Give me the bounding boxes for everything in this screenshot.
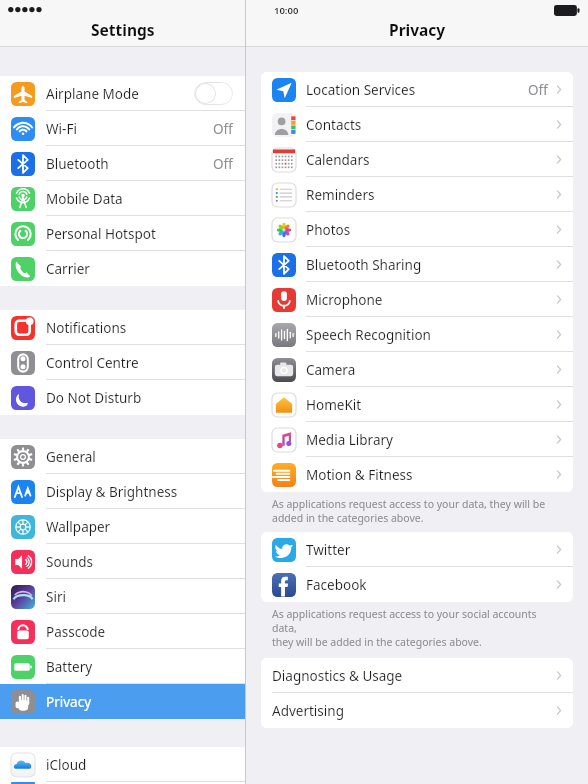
- staticText: Reminders: [306, 186, 375, 204]
- staticText: Off: [213, 155, 233, 173]
- staticText: As applications request access to your s…: [272, 607, 557, 649]
- staticText: Privacy: [389, 19, 446, 40]
- staticText: Twitter: [306, 541, 351, 559]
- staticText: Facebook: [306, 576, 367, 594]
- button[interactable]: Bluetooth Sharing: [261, 247, 573, 282]
- staticText: Bluetooth Sharing: [306, 256, 422, 274]
- button[interactable]: [0, 782, 245, 784]
- button[interactable]: Diagnostics & Usage: [261, 658, 573, 693]
- button[interactable]: Speech Recognition: [261, 317, 573, 352]
- button[interactable]: Display & Brightness: [0, 474, 245, 509]
- button[interactable]: Airplane Mode: [0, 76, 245, 111]
- button[interactable]: HomeKit: [261, 387, 573, 422]
- button[interactable]: Mobile Data: [0, 181, 245, 216]
- button[interactable]: Wi-Fi: [0, 111, 245, 146]
- button[interactable]: Motion & Fitness: [261, 457, 573, 492]
- staticText: Speech Recognition: [306, 326, 431, 344]
- staticText: Off: [528, 81, 548, 99]
- button[interactable]: Carrier: [0, 251, 245, 286]
- staticText: Mobile Data: [46, 190, 123, 208]
- button[interactable]: Photos: [261, 212, 573, 247]
- staticText: Camera: [306, 361, 356, 379]
- staticText: Bluetooth: [46, 155, 109, 173]
- button[interactable]: Microphone: [261, 282, 573, 317]
- staticText: Siri: [46, 588, 66, 606]
- button[interactable]: Siri: [0, 579, 245, 614]
- button[interactable]: iCloud: [0, 747, 245, 782]
- button[interactable]: Camera: [261, 352, 573, 387]
- button[interactable]: Reminders: [261, 177, 573, 212]
- staticText: Personal Hotspot: [46, 225, 156, 243]
- staticText: Do Not Disturb: [46, 389, 142, 407]
- staticText: Control Centre: [46, 354, 139, 372]
- button[interactable]: Calendars: [261, 142, 573, 177]
- staticText: Microphone: [306, 291, 383, 309]
- button[interactable]: Notifications: [0, 310, 245, 345]
- staticText: Calendars: [306, 151, 370, 169]
- button[interactable]: Wallpaper: [0, 509, 245, 544]
- staticText: Battery: [46, 658, 93, 676]
- button[interactable]: General: [0, 439, 245, 474]
- button[interactable]: Location Services: [261, 72, 573, 107]
- staticText: Wi-Fi: [46, 120, 77, 138]
- staticText: HomeKit: [306, 396, 362, 414]
- staticText: Notifications: [46, 319, 127, 337]
- button[interactable]: Privacy: [0, 684, 245, 719]
- staticText: Diagnostics & Usage: [272, 667, 403, 685]
- staticText: Advertising: [272, 702, 344, 720]
- staticText: Wallpaper: [46, 518, 111, 536]
- button[interactable]: Advertising: [261, 693, 573, 728]
- button[interactable]: Personal Hotspot: [0, 216, 245, 251]
- staticText: Location Services: [306, 81, 416, 99]
- staticText: Media Library: [306, 431, 393, 449]
- staticText: Off: [213, 120, 233, 138]
- button[interactable]: Sounds: [0, 544, 245, 579]
- button[interactable]: Battery: [0, 649, 245, 684]
- button[interactable]: Do Not Disturb: [0, 380, 245, 415]
- staticText: iCloud: [46, 756, 87, 774]
- button[interactable]: Twitter: [261, 532, 573, 567]
- staticText: Display & Brightness: [46, 483, 178, 501]
- staticText: Settings: [91, 19, 155, 40]
- staticText: Photos: [306, 221, 351, 239]
- staticText: Airplane Mode: [46, 85, 139, 103]
- staticText: Sounds: [46, 553, 94, 571]
- staticText: As applications request access to your d…: [272, 497, 546, 525]
- button[interactable]: Facebook: [261, 567, 573, 602]
- staticText: Privacy: [46, 693, 92, 711]
- button[interactable]: Passcode: [0, 614, 245, 649]
- staticText: Carrier: [46, 260, 90, 278]
- button[interactable]: Media Library: [261, 422, 573, 457]
- staticText: Contacts: [306, 116, 362, 134]
- staticText: 10:00: [274, 4, 299, 17]
- button[interactable]: Bluetooth: [0, 146, 245, 181]
- button[interactable]: Airplane Mode toggle: [194, 82, 233, 105]
- staticText: Passcode: [46, 623, 106, 641]
- staticText: General: [46, 448, 96, 466]
- staticText: Motion & Fitness: [306, 466, 413, 484]
- button[interactable]: Control Centre: [0, 345, 245, 380]
- button[interactable]: Contacts: [261, 107, 573, 142]
